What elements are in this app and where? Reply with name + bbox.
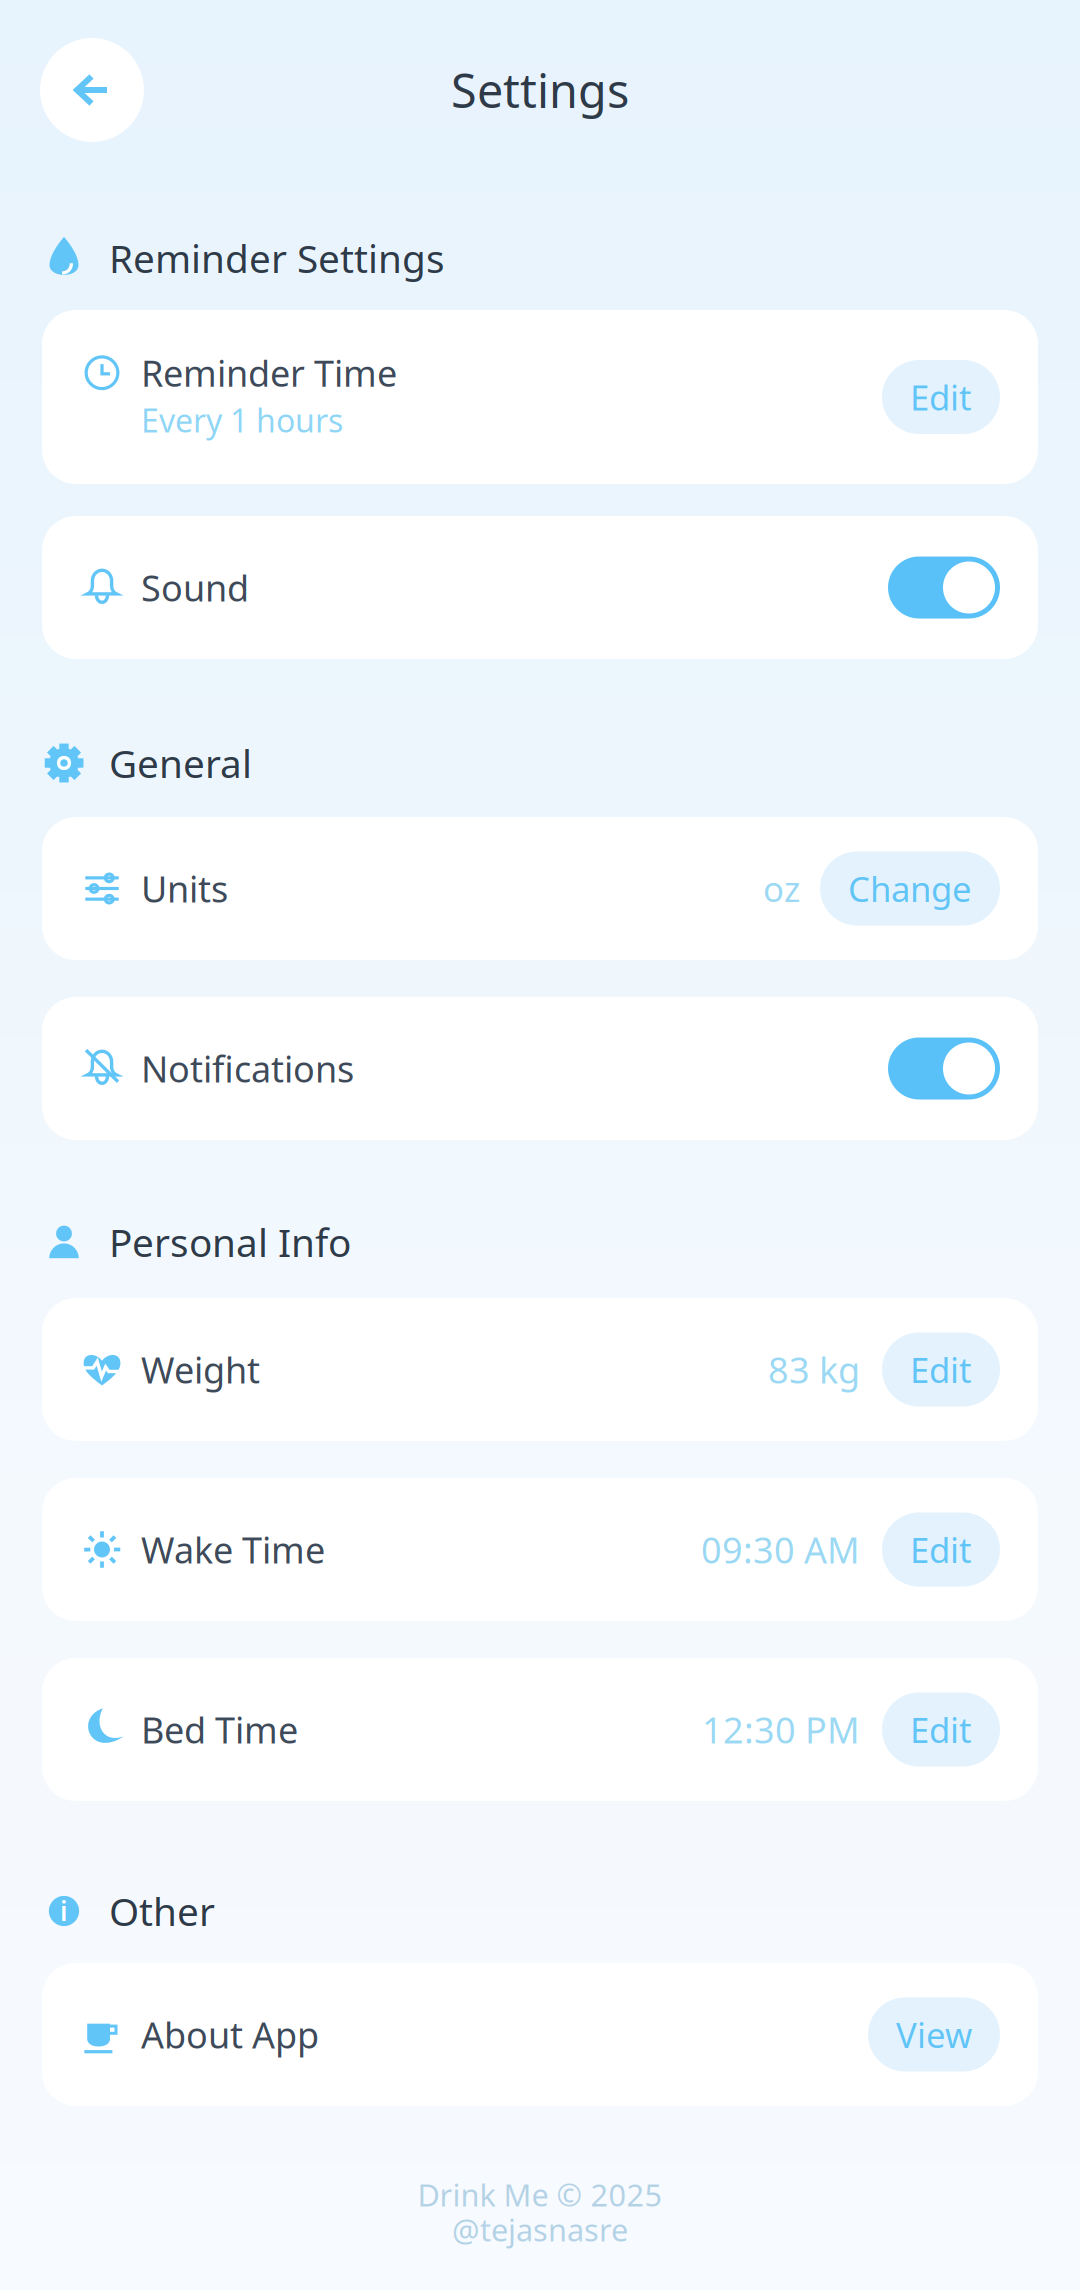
staticText: i <box>60 1893 68 1928</box>
staticText: Personal Info <box>109 1216 351 1268</box>
staticText: Notifications <box>141 1045 354 1092</box>
staticText: View <box>896 2011 972 2057</box>
button[interactable]: Toggle <box>888 556 1000 618</box>
staticText: Sound <box>141 564 249 611</box>
button[interactable]: About App <box>42 1963 1038 2106</box>
staticText: Settings <box>451 59 629 121</box>
button[interactable]: Change <box>820 851 1000 925</box>
staticText: Drink Me © 2025 <box>417 2174 662 2215</box>
staticText: Units <box>141 865 228 912</box>
staticText: 83 kg <box>768 1346 860 1393</box>
button[interactable]: Edit <box>882 1512 1000 1586</box>
button[interactable]: Sound <box>42 516 1038 659</box>
button[interactable]: Wake Time <box>42 1478 1038 1621</box>
staticText: 12:30 PM <box>702 1706 860 1753</box>
staticText: @tejasnasre <box>452 2209 628 2250</box>
staticText: Bed Time <box>141 1706 298 1753</box>
staticText: oz <box>763 865 800 911</box>
staticText: About App <box>141 2011 319 2058</box>
staticText: Wake Time <box>141 1526 325 1573</box>
staticText: Reminder Settings <box>109 232 445 284</box>
staticText: Edit <box>910 1346 972 1392</box>
button[interactable]: Back <box>40 38 144 142</box>
button[interactable]: View <box>868 1997 1000 2071</box>
staticText: Other <box>109 1885 215 1937</box>
staticText: Reminder Time <box>141 349 397 397</box>
staticText: Weight <box>141 1346 260 1393</box>
staticText: Every 1 hours <box>141 399 343 441</box>
button[interactable]: Edit <box>882 1692 1000 1766</box>
button[interactable]: Bed Time <box>42 1658 1038 1801</box>
button[interactable]: Toggle <box>888 1037 1000 1099</box>
staticText: Edit <box>910 1706 972 1752</box>
staticText: 09:30 AM <box>701 1526 860 1573</box>
staticText: Change <box>848 865 972 911</box>
button[interactable]: Weight <box>42 1298 1038 1441</box>
button[interactable]: Units <box>42 817 1038 960</box>
button[interactable]: Edit <box>882 1332 1000 1406</box>
button[interactable]: Reminder Time <box>42 310 1038 484</box>
staticText: Edit <box>910 1526 972 1572</box>
staticText: Edit <box>910 374 972 420</box>
button[interactable]: Notifications <box>42 997 1038 1140</box>
staticText: General <box>109 737 252 789</box>
button[interactable]: Edit <box>882 360 1000 434</box>
